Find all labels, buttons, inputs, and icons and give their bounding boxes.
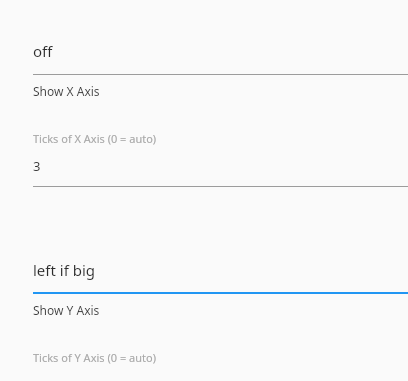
staticText: Show X Axis: [33, 83, 100, 99]
staticText: Ticks of X Axis (0 = auto): [33, 131, 157, 146]
staticText: Show Y Axis: [33, 302, 100, 318]
staticText: off: [33, 41, 53, 61]
button[interactable]: off: [0, 41, 408, 99]
staticText: left if big: [33, 260, 96, 280]
staticText: 3: [33, 157, 41, 175]
button[interactable]: Ticks of X Axis (0 = auto): [0, 131, 408, 187]
staticText: Ticks of Y Axis (0 = auto): [33, 350, 156, 365]
button[interactable]: Ticks of Y Axis (0 = auto): [0, 350, 408, 381]
button[interactable]: left if big: [0, 260, 408, 318]
